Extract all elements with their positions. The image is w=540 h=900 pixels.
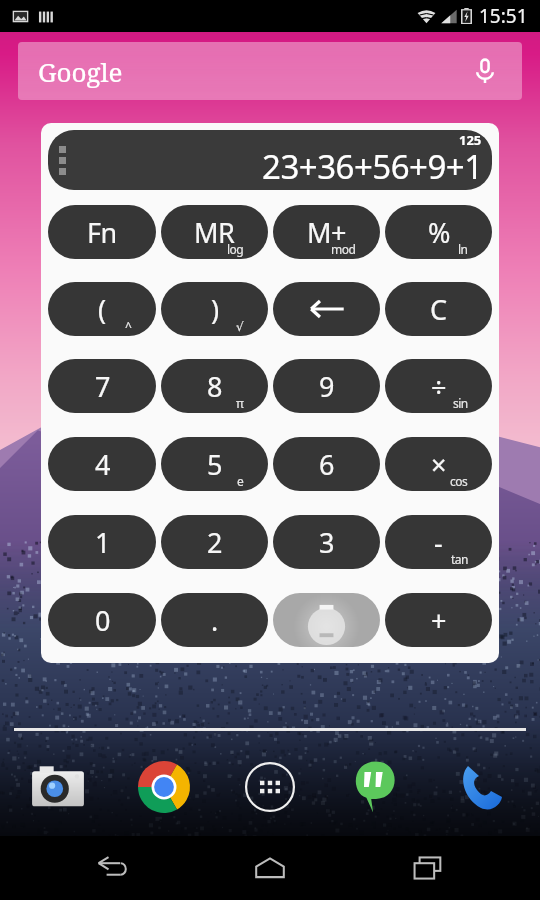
button[interactable]: . — [161, 593, 268, 647]
staticText: 4 — [95, 446, 110, 483]
button[interactable]: ) — [161, 282, 268, 336]
staticText: Google — [38, 54, 123, 89]
button[interactable]: Fn — [48, 205, 156, 259]
staticText: + — [431, 602, 446, 639]
staticText: 5 — [207, 446, 222, 483]
button[interactable]: % — [385, 205, 492, 259]
staticText: e — [237, 473, 244, 489]
staticText: 8 — [207, 368, 222, 405]
button[interactable]: Home — [225, 836, 315, 900]
staticText: 2 — [207, 524, 222, 561]
button[interactable]: 7 — [48, 359, 156, 413]
button[interactable]: Backspace — [273, 282, 380, 336]
staticText: . — [211, 602, 218, 639]
button[interactable]: M+ — [273, 205, 380, 259]
button[interactable]: 5 — [161, 437, 268, 491]
staticText: √ — [236, 320, 244, 334]
button[interactable]: 2 — [161, 515, 268, 569]
button[interactable]: Hangouts — [344, 755, 408, 819]
button[interactable]: ÷ — [385, 359, 492, 413]
button[interactable]: Camera — [26, 755, 90, 819]
staticText: M+ — [307, 214, 346, 251]
staticText: × — [431, 446, 446, 483]
button[interactable]: + — [385, 593, 492, 647]
button[interactable]: Equals — [273, 593, 380, 647]
staticText: 0 — [95, 602, 110, 639]
button[interactable]: Back — [68, 836, 158, 900]
button[interactable]: Apps — [238, 755, 302, 819]
staticText: π — [236, 395, 244, 411]
staticText: MR — [194, 214, 235, 251]
button[interactable]: 6 — [273, 437, 380, 491]
button[interactable]: Chrome — [132, 755, 196, 819]
button[interactable]: Recents — [383, 836, 473, 900]
staticText: log — [227, 241, 244, 257]
staticText: sin — [453, 395, 468, 411]
staticText: tan — [451, 551, 468, 567]
button[interactable]: Google — [18, 42, 522, 100]
staticText: % — [428, 214, 450, 251]
staticText: ) — [211, 291, 219, 328]
staticText: - — [434, 524, 443, 561]
button[interactable]: 125 — [48, 130, 492, 190]
button[interactable]: 1 — [48, 515, 156, 569]
staticText: 9 — [319, 368, 334, 405]
staticText: ln — [458, 241, 468, 257]
button[interactable]: 8 — [161, 359, 268, 413]
button[interactable]: - — [385, 515, 492, 569]
button[interactable]: × — [385, 437, 492, 491]
staticText: Fn — [87, 214, 117, 251]
button[interactable]: ( — [48, 282, 156, 336]
staticText: 6 — [319, 446, 334, 483]
button[interactable]: 0 — [48, 593, 156, 647]
staticText: 3 — [319, 524, 334, 561]
button[interactable]: C — [385, 282, 492, 336]
button[interactable]: 4 — [48, 437, 156, 491]
button[interactable]: 9 — [273, 359, 380, 413]
staticText: 23+36+56+9+1 — [262, 144, 483, 189]
staticText: ( — [98, 291, 106, 328]
staticText: mod — [331, 241, 356, 257]
staticText: ^ — [125, 318, 132, 334]
staticText: C — [430, 291, 447, 328]
staticText: 7 — [95, 368, 110, 405]
staticText: 125 — [459, 131, 482, 149]
staticText: 1 — [95, 524, 110, 561]
button[interactable]: MR — [161, 205, 268, 259]
button[interactable]: 3 — [273, 515, 380, 569]
button[interactable]: Voice search — [470, 56, 500, 86]
staticText: ÷ — [431, 368, 446, 405]
button[interactable]: Phone — [450, 755, 514, 819]
staticText: cos — [450, 473, 468, 489]
staticText: 15:51 — [479, 3, 528, 29]
